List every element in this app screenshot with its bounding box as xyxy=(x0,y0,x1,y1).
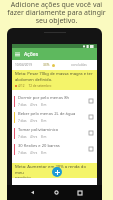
button[interactable]: Meta: Aumentar em 20% a renda do meu neg… xyxy=(12,163,97,178)
button[interactable]: 10/04/2019 xyxy=(15,60,94,70)
other: Concluir xyxy=(89,131,93,135)
button[interactable]: Adicionar ação xyxy=(52,167,62,177)
staticText: 4 hrs xyxy=(30,135,38,139)
staticText: 8 m xyxy=(41,103,47,107)
button[interactable]: Menu xyxy=(12,48,97,60)
button[interactable]: Recentes xyxy=(78,191,82,195)
staticText: Tomar polivitaminico xyxy=(18,127,59,133)
staticText: Adicione ações que você vai fazer diaria… xyxy=(7,0,106,25)
staticText: Meta: Pesar 70kg de massa magra e ter ab… xyxy=(15,71,93,82)
staticText: Ações xyxy=(24,51,39,58)
staticText: 4/12 72 de setembro xyxy=(18,84,52,88)
staticText: 7 dias xyxy=(18,135,27,139)
button[interactable]: 30 flexões e 20 barras xyxy=(12,141,97,157)
other: Concluir xyxy=(89,99,93,103)
other: Concluir xyxy=(89,147,93,151)
staticText: 4 hrs xyxy=(30,119,38,123)
staticText: 8 m xyxy=(41,135,47,139)
staticText: Meta: Aumentar em 20% a renda do meu neg… xyxy=(15,164,95,178)
staticText: 33% xyxy=(43,63,50,67)
staticText: 4 hrs xyxy=(30,103,38,107)
staticText: 7 dias xyxy=(18,151,27,155)
other: Menu xyxy=(15,52,20,56)
staticText: Dormir por pelo menos 8h xyxy=(18,95,70,101)
staticText: 30 flexões e 20 barras xyxy=(18,143,60,149)
button[interactable]: Dormir por pelo menos 8h xyxy=(12,93,97,109)
staticText: 7 dias xyxy=(18,119,27,123)
staticText: concluídas xyxy=(71,63,87,67)
other: Concluir xyxy=(89,115,93,119)
button[interactable]: Beber pelo menos 2L de água xyxy=(12,109,97,125)
button[interactable]: Início xyxy=(54,190,59,195)
button[interactable]: Meta: Pesar 70kg de massa magra e ter ab… xyxy=(12,70,97,90)
staticText: 10/04/2019 xyxy=(15,63,32,67)
staticText: Beber pelo menos 2L de água xyxy=(18,111,76,117)
staticText: 8 m xyxy=(41,151,47,155)
staticText: 7 dias xyxy=(18,103,27,107)
staticText: 8 m xyxy=(41,119,47,123)
button[interactable]: Voltar xyxy=(30,190,35,195)
button[interactable]: Tomar polivitaminico xyxy=(12,125,97,141)
staticText: 4 hrs xyxy=(30,151,38,155)
